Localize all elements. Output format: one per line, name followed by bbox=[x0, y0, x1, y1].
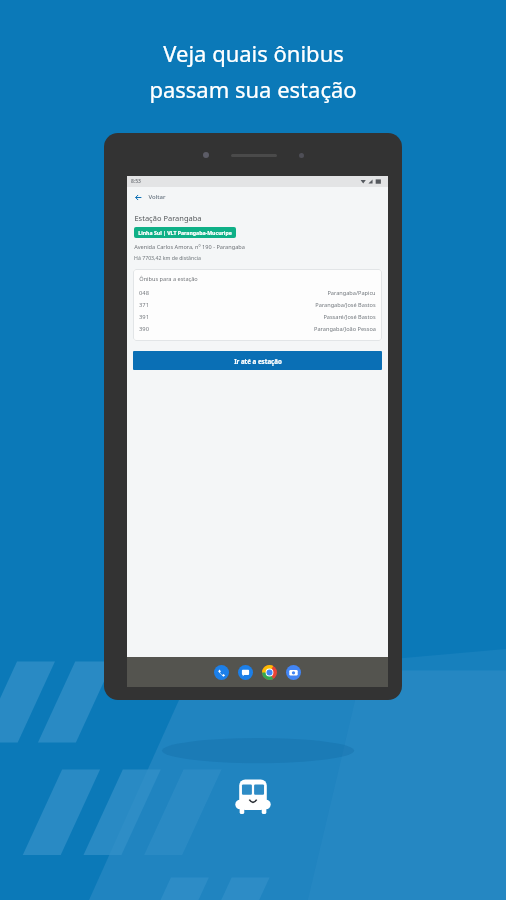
button[interactable]: 391 bbox=[139, 311, 376, 323]
staticText: Ônibus para a estação bbox=[139, 275, 198, 283]
staticText: Parangaba/José Bastos bbox=[315, 301, 376, 309]
staticText: Estação Parangaba bbox=[134, 213, 202, 223]
staticText: Há 7703,42 km de distância bbox=[134, 254, 201, 261]
staticText: Parangaba/Papicu bbox=[327, 289, 376, 297]
button[interactable]: Chrome bbox=[262, 665, 277, 680]
staticText: Ir até a estação bbox=[234, 357, 282, 365]
button[interactable]: Camera bbox=[286, 665, 301, 680]
staticText: Veja quais ônibus bbox=[163, 38, 344, 68]
staticText: 8:53 bbox=[131, 178, 141, 185]
button[interactable]: Back bbox=[127, 187, 388, 207]
other: Back bbox=[134, 193, 143, 202]
staticText: Linha Sul | VLT Parangaba-Mucuripe bbox=[138, 229, 232, 236]
staticText: 391 bbox=[139, 313, 149, 321]
staticText: Parangaba/João Pessoa bbox=[314, 325, 376, 333]
staticText: passam sua estação bbox=[149, 74, 357, 104]
staticText: Passaré/José Bastos bbox=[323, 313, 376, 321]
button[interactable]: Messages bbox=[238, 665, 253, 680]
button[interactable]: 390 bbox=[139, 323, 376, 335]
staticText: Avenida Carlos Amora, nº 190 - Parangaba bbox=[134, 243, 245, 251]
staticText: 390 bbox=[139, 325, 149, 333]
button[interactable]: Linha Sul | VLT Parangaba-Mucuripe bbox=[134, 227, 236, 238]
button[interactable]: 371 bbox=[139, 299, 376, 311]
button[interactable]: Ir até a estação bbox=[133, 351, 382, 370]
button[interactable]: Phone bbox=[214, 665, 229, 680]
button[interactable]: 048 bbox=[139, 287, 376, 299]
staticText: Voltar bbox=[148, 193, 166, 201]
staticText: 048 bbox=[139, 289, 149, 297]
staticText: 371 bbox=[139, 301, 149, 309]
